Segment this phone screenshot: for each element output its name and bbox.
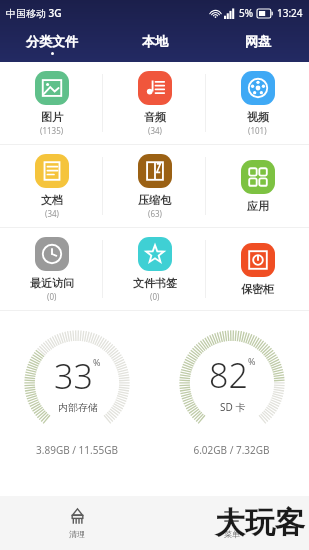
other: Safe <box>241 243 275 277</box>
staticText: 清理 <box>69 529 85 539</box>
staticText: 菜单 <box>224 529 240 539</box>
staticText: (34) <box>45 208 59 219</box>
staticText: 分类文件 <box>26 33 78 49</box>
staticText: 最近访问 <box>30 276 74 290</box>
staticText: 82 <box>209 352 248 398</box>
staticText: (34) <box>148 125 162 136</box>
staticText: 6.02GB / 7.32GB <box>193 443 270 457</box>
button[interactable]: Audio <box>103 62 206 144</box>
other: Video <box>241 71 275 105</box>
staticText: (101) <box>248 125 267 136</box>
staticText: % <box>248 355 256 367</box>
staticText: 文件书签 <box>133 276 177 290</box>
button[interactable]: 本地 <box>103 26 206 62</box>
button[interactable]: 82 <box>154 327 309 457</box>
staticText: 保密柜 <box>241 282 274 296</box>
staticText: 应用 <box>247 199 269 213</box>
other: Recent <box>35 237 69 271</box>
staticText: 视频 <box>247 110 269 124</box>
button[interactable]: 清理 <box>0 507 154 539</box>
staticText: 5% <box>239 6 254 20</box>
other: Pictures <box>35 71 69 105</box>
staticText: (1135) <box>40 125 64 136</box>
staticText: 压缩包 <box>138 193 171 207</box>
button[interactable]: Apps <box>206 145 309 227</box>
staticText: 大玩客 <box>215 504 305 542</box>
staticText: % <box>93 356 101 368</box>
staticText: 音频 <box>144 110 166 124</box>
button[interactable]: Recent <box>0 228 103 310</box>
staticText: (0) <box>150 291 160 302</box>
button[interactable]: 菜单 <box>154 507 309 539</box>
staticText: 本地 <box>142 33 168 49</box>
staticText: 内部存储 <box>58 401 98 414</box>
other: Apps <box>241 160 275 194</box>
staticText: 中国移动 3G <box>6 6 62 20</box>
staticText: 13:24 <box>277 6 303 20</box>
staticText: (63) <box>148 208 162 219</box>
button[interactable]: Video <box>206 62 309 144</box>
other: Documents <box>35 154 69 188</box>
staticText: 文档 <box>41 193 63 207</box>
staticText: 网盘 <box>245 33 271 49</box>
button[interactable]: Archives <box>103 145 206 227</box>
staticText: 33 <box>54 353 93 399</box>
other: Archives <box>138 154 172 188</box>
button[interactable]: 33 <box>0 327 154 457</box>
button[interactable]: Documents <box>0 145 103 227</box>
other: Audio <box>138 71 172 105</box>
staticText: (0) <box>47 291 57 302</box>
button[interactable]: 分类文件 <box>0 26 103 62</box>
staticText: 图片 <box>41 110 63 124</box>
button[interactable]: 网盘 <box>206 26 309 62</box>
staticText: 3.89GB / 11.55GB <box>36 443 118 457</box>
button[interactable]: Bookmarks <box>103 228 206 310</box>
button[interactable]: Pictures <box>0 62 103 144</box>
staticText: SD 卡 <box>220 400 246 414</box>
button[interactable]: Safe <box>206 228 309 310</box>
other: Bookmarks <box>138 237 172 271</box>
